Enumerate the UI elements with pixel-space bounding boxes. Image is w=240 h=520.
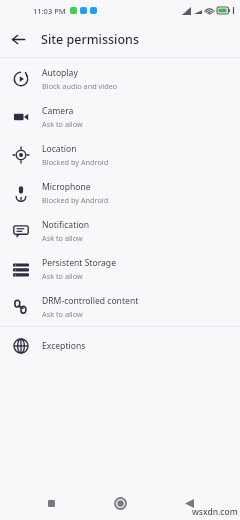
button[interactable]: Microphone — [0, 174, 240, 212]
button[interactable]: Home — [105, 488, 135, 518]
button[interactable]: Camera — [0, 98, 240, 136]
other: Location — [13, 147, 29, 163]
other: DRM-controlled content — [13, 299, 29, 315]
staticText: Block audio and video — [42, 81, 118, 91]
other: Autoplay — [13, 71, 29, 87]
button[interactable]: Recents — [36, 488, 66, 518]
staticText: Autoplay — [42, 67, 78, 79]
staticText: Blocked by Android — [42, 157, 109, 167]
staticText: 11:03 PM — [33, 6, 66, 16]
button[interactable]: Notification — [0, 212, 240, 250]
other: Notification — [13, 223, 29, 239]
other: Exceptions — [13, 338, 29, 354]
staticText: Ask to allow — [42, 271, 83, 281]
button[interactable]: DRM-controlled content — [0, 288, 240, 326]
button[interactable]: Back — [174, 488, 204, 518]
other: Camera — [13, 109, 29, 125]
staticText: Blocked by Android — [42, 195, 109, 205]
staticText: wsxdn.com — [192, 506, 238, 518]
other: Persistent Storage — [13, 261, 29, 277]
staticText: Microphone — [42, 181, 91, 193]
staticText: Ask to allow — [42, 233, 83, 243]
button[interactable]: Back — [0, 21, 36, 57]
staticText: Persistent Storage — [42, 257, 116, 269]
staticText: Camera — [42, 105, 74, 117]
staticText: Site permissions — [41, 31, 139, 48]
staticText: Exceptions — [42, 340, 86, 352]
staticText: DRM-controlled content — [42, 295, 139, 307]
button[interactable]: Location — [0, 136, 240, 174]
button[interactable]: Autoplay — [0, 60, 240, 98]
staticText: Ask to allow — [42, 309, 83, 319]
other: Microphone — [13, 185, 29, 201]
staticText: Notification — [42, 219, 89, 231]
staticText: Ask to allow — [42, 119, 83, 129]
staticText: Location — [42, 143, 77, 155]
button[interactable]: Exceptions — [0, 327, 240, 365]
button[interactable]: Persistent Storage — [0, 250, 240, 288]
